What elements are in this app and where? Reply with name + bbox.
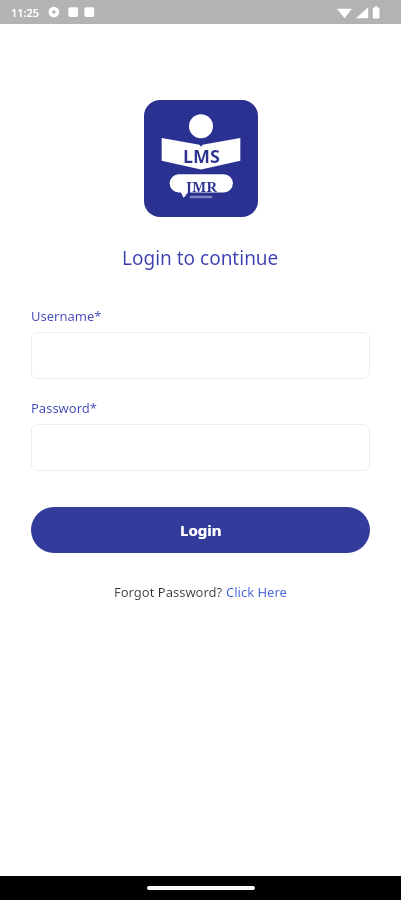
staticText: Forgot Password?: [114, 583, 226, 601]
staticText: Password*: [31, 399, 97, 417]
staticText: JMR: [186, 176, 217, 196]
button[interactable]: Text input field: [31, 424, 370, 471]
button[interactable]: Click Here: [226, 583, 287, 601]
staticText: LMS: [183, 144, 220, 169]
staticText: Login: [180, 520, 222, 540]
staticText: Username*: [31, 307, 102, 325]
staticText: Click Here: [226, 583, 287, 601]
staticText: Login to continue: [122, 245, 279, 271]
button[interactable]: Login: [31, 507, 370, 553]
staticText: 11:25: [11, 5, 40, 20]
button[interactable]: Text input field: [31, 332, 370, 379]
